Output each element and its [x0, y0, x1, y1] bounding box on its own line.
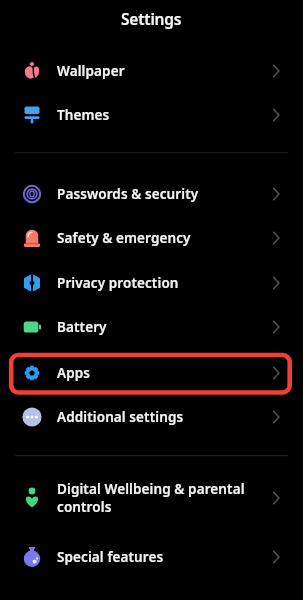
button[interactable]: Safety & emergency: [0, 216, 303, 260]
button[interactable]: Wallpaper: [0, 49, 303, 93]
staticText: Apps: [57, 364, 91, 382]
staticText: Battery: [57, 318, 107, 336]
button[interactable]: Apps: [0, 351, 303, 395]
staticText: Privacy protection: [57, 274, 179, 292]
staticText: Digital Wellbeing & parental: [57, 480, 245, 498]
staticText: Passwords & security: [57, 185, 199, 203]
button[interactable]: Battery: [0, 305, 303, 349]
button[interactable]: Digital Wellbeing & parental: [0, 469, 303, 527]
button[interactable]: Special features: [0, 535, 303, 579]
staticText: Safety & emergency: [57, 229, 191, 247]
staticText: Settings: [121, 8, 182, 29]
button[interactable]: Additional settings: [0, 395, 303, 439]
staticText: Wallpaper: [57, 62, 125, 80]
staticText: Themes: [57, 106, 110, 124]
button[interactable]: Passwords & security: [0, 172, 303, 216]
button[interactable]: Themes: [0, 93, 303, 137]
staticText: controls: [57, 498, 112, 516]
button[interactable]: Privacy protection: [0, 261, 303, 305]
staticText: Special features: [57, 548, 164, 566]
staticText: Additional settings: [57, 408, 184, 426]
